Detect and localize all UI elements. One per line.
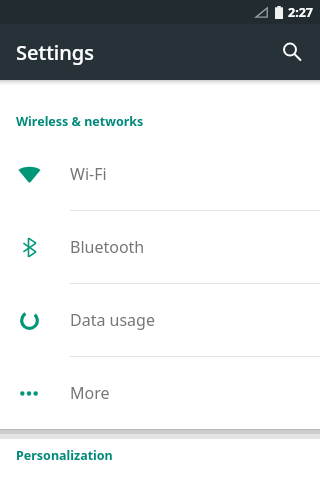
button[interactable]: More [0,357,320,429]
staticText: Bluetooth [70,236,145,258]
staticText: Wi-Fi [70,163,107,185]
button[interactable]: Search [275,35,309,69]
staticText: Personalization [16,447,113,464]
button[interactable]: Bluetooth [0,211,320,283]
staticText: Data usage [70,309,155,331]
staticText: More [70,382,110,404]
staticText: 2:27 [288,4,313,21]
button[interactable]: Wi-Fi [0,138,320,210]
staticText: Settings [16,39,94,66]
button[interactable]: Data usage [0,284,320,356]
staticText: Wireless & networks [16,113,144,130]
